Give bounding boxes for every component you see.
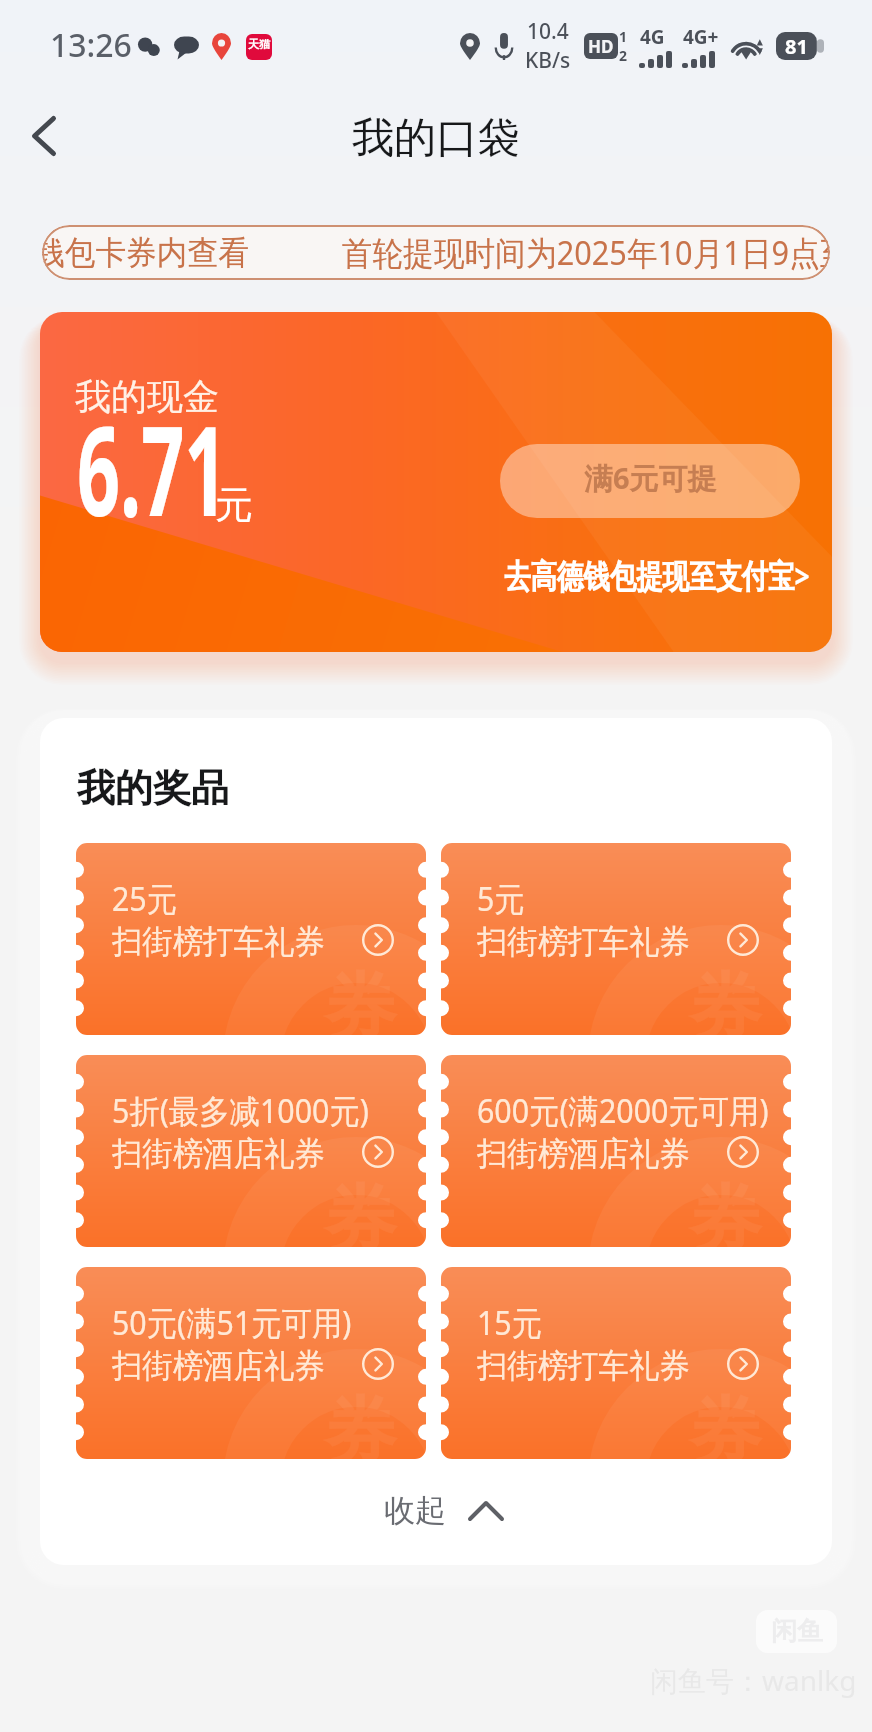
staticText: 扫街榜酒店礼券 bbox=[477, 1133, 689, 1175]
staticText: 券 bbox=[689, 1175, 761, 1247]
staticText: 1 bbox=[619, 27, 628, 46]
staticText: 券 bbox=[689, 963, 761, 1035]
staticText: 我的奖品 bbox=[77, 764, 229, 812]
button[interactable]: 钱包卡券内查看 bbox=[42, 225, 830, 280]
staticText: 扫街榜打车礼券 bbox=[477, 1345, 689, 1387]
staticText: 15元 bbox=[477, 1300, 542, 1345]
staticText: 我的现金 bbox=[75, 374, 219, 419]
staticText: 扫街榜酒店礼券 bbox=[112, 1345, 324, 1387]
button[interactable]: 券 bbox=[441, 843, 791, 1035]
staticText: 81 bbox=[785, 33, 808, 60]
staticText: 收起 bbox=[384, 1491, 446, 1530]
staticText: HD bbox=[588, 35, 614, 58]
staticText: 5折(最多减1000元) bbox=[112, 1088, 370, 1133]
staticText: 满6元可提 bbox=[584, 458, 717, 498]
staticText: 钱包卡券内查看 bbox=[42, 232, 249, 274]
button[interactable]: 满6元可提 bbox=[500, 444, 800, 518]
staticText: 扫街榜打车礼券 bbox=[477, 921, 689, 963]
staticText: 扫街榜打车礼券 bbox=[112, 921, 324, 963]
staticText: 2 bbox=[619, 46, 628, 65]
button[interactable]: 券 bbox=[76, 843, 426, 1035]
staticText: 闲鱼号：wanlkg bbox=[650, 1661, 857, 1699]
staticText: 600元(满2000元可用) bbox=[477, 1088, 769, 1133]
staticText: 4G+ bbox=[683, 24, 719, 50]
staticText: 4G bbox=[640, 24, 665, 50]
staticText: 券 bbox=[324, 963, 396, 1035]
staticText: 天猫 bbox=[248, 37, 270, 51]
button[interactable]: 券 bbox=[76, 1055, 426, 1247]
staticText: 13:26 bbox=[50, 23, 132, 67]
button[interactable]: 券 bbox=[441, 1267, 791, 1459]
staticText: 扫街榜酒店礼券 bbox=[112, 1133, 324, 1175]
button[interactable]: 去高德钱包提现至支付宝> bbox=[504, 553, 832, 598]
staticText: KB/s bbox=[525, 46, 571, 75]
staticText: 闲鱼 bbox=[771, 1615, 823, 1648]
staticText: 25元 bbox=[112, 876, 177, 921]
button[interactable]: Back bbox=[12, 104, 76, 168]
staticText: 首轮提现时间为2025年10月1日9点至 bbox=[342, 230, 830, 275]
staticText: 6.71 bbox=[77, 383, 227, 552]
button[interactable]: 我的现金 bbox=[40, 312, 832, 652]
button[interactable]: 收起 bbox=[384, 1491, 504, 1530]
button[interactable]: 券 bbox=[441, 1055, 791, 1247]
button[interactable]: 券 bbox=[76, 1267, 426, 1459]
staticText: 我的口袋 bbox=[352, 112, 520, 165]
staticText: 10.4 bbox=[527, 17, 569, 46]
staticText: 券 bbox=[689, 1387, 761, 1459]
staticText: 5元 bbox=[477, 876, 525, 921]
staticText: 券 bbox=[324, 1175, 396, 1247]
staticText: 50元(满51元可用) bbox=[112, 1300, 352, 1345]
staticText: 券 bbox=[324, 1387, 396, 1459]
staticText: 元 bbox=[215, 481, 253, 529]
